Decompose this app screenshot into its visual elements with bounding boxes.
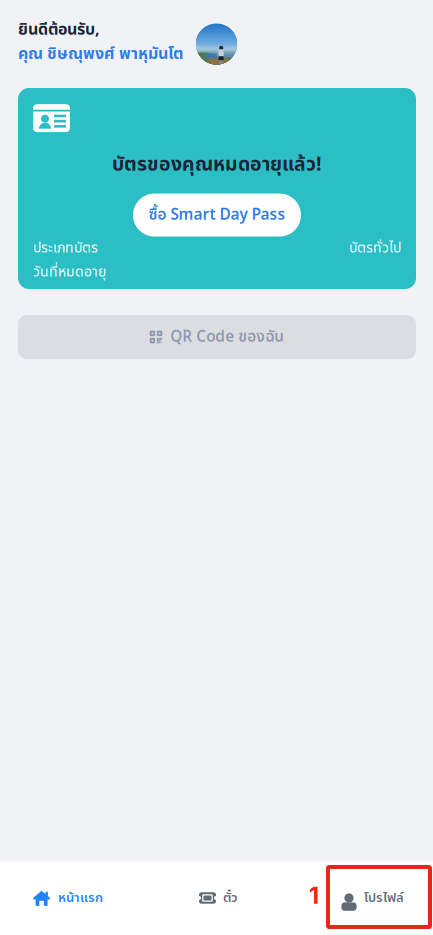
button[interactable]: หน้าแรก <box>0 861 163 935</box>
staticText: บัตรของคุณหมดอายุแล้ว! <box>112 150 322 179</box>
button[interactable]: ตั๋ว <box>163 861 302 935</box>
staticText: QR Code ของฉัน <box>170 325 284 349</box>
staticText: ประเภทบัตร <box>33 238 98 259</box>
staticText: ตั๋ว <box>223 888 238 908</box>
staticText: ยินดีต้อนรับ, <box>18 18 100 42</box>
staticText: โปรไฟล์ <box>364 888 404 908</box>
button[interactable]: ซื้อ Smart Day Pass <box>133 194 301 237</box>
staticText: คุณ ชิษณุพงศ์ พาหุมันโต <box>18 42 183 66</box>
staticText: 1 <box>309 880 319 909</box>
staticText: บัตรทั่วไป <box>349 238 401 259</box>
staticText: ซื้อ Smart Day Pass <box>148 203 285 227</box>
button[interactable]: โปรไฟล์ <box>302 861 433 935</box>
button[interactable]: QR Code ของฉัน <box>18 315 416 359</box>
staticText: วันที่หมดอายุ <box>33 262 106 283</box>
staticText: หน้าแรก <box>58 888 103 908</box>
